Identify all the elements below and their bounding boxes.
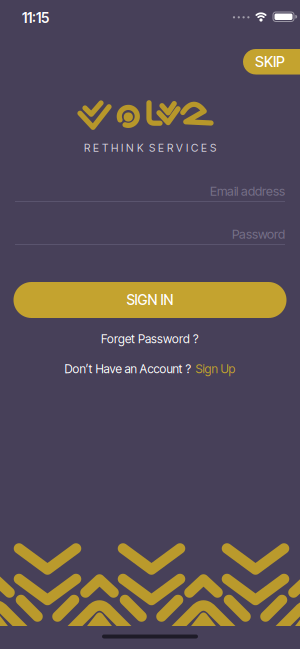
staticText: Forget Password ? [101,331,199,346]
staticText: SIGN IN [126,291,173,308]
staticText: Don’t Have an Account ? [64,361,191,376]
staticText: 11:15 [22,9,49,26]
button[interactable]: SKIP [243,49,300,74]
staticText: Password [232,226,285,242]
staticText: Email address [210,183,285,199]
button[interactable]: Forget Password ? [101,331,199,346]
button[interactable]: SIGN IN [13,282,286,318]
staticText: Sign Up [195,361,235,376]
staticText: SKIP [255,53,285,71]
staticText: R E T H I N K S E R V I C E S [84,141,216,154]
button[interactable]: Sign Up [195,361,235,376]
button[interactable]: Password [15,226,285,245]
button[interactable]: Email address [15,183,285,202]
